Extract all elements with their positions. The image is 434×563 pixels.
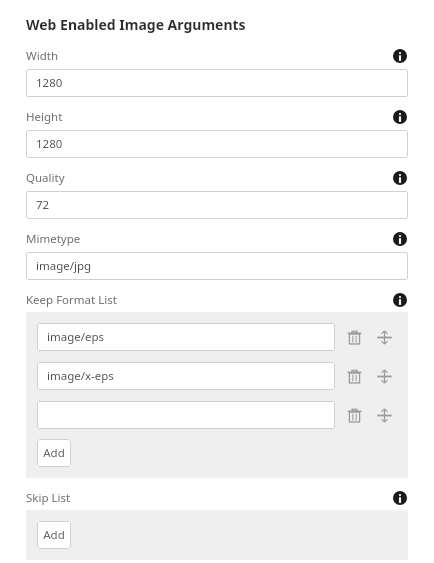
staticText: Skip List xyxy=(26,490,71,506)
staticText: Add xyxy=(43,445,65,461)
staticText: Width xyxy=(26,48,58,64)
staticText: Height xyxy=(26,109,63,125)
staticText: Web Enabled Image Arguments xyxy=(26,15,246,34)
button[interactable]: image/eps xyxy=(37,323,335,351)
button[interactable] xyxy=(37,401,335,429)
staticText: image/jpg xyxy=(36,258,92,274)
button[interactable]: Add xyxy=(37,439,71,467)
staticText: image/x-eps xyxy=(47,368,114,384)
button[interactable]: 72 xyxy=(26,191,408,219)
staticText: 1280 xyxy=(36,136,63,152)
button[interactable]: Reorder xyxy=(371,363,397,389)
staticText: Add xyxy=(43,527,65,543)
button[interactable]: Reorder xyxy=(371,324,397,350)
button[interactable]: Delete xyxy=(341,402,367,428)
button[interactable]: image/x-eps xyxy=(37,362,335,390)
button[interactable]: More information xyxy=(392,48,408,64)
button[interactable]: 1280 xyxy=(26,130,408,158)
button[interactable]: 1280 xyxy=(26,69,408,97)
staticText: Quality xyxy=(26,170,65,186)
button[interactable]: More information xyxy=(392,109,408,125)
staticText: 1280 xyxy=(36,75,63,91)
staticText: Mimetype xyxy=(26,231,81,247)
staticText: Keep Format List xyxy=(26,292,117,308)
button[interactable]: Reorder xyxy=(371,402,397,428)
button[interactable]: More information xyxy=(392,292,408,308)
button[interactable]: image/jpg xyxy=(26,252,408,280)
button[interactable]: Delete xyxy=(341,363,367,389)
staticText: image/eps xyxy=(47,329,105,345)
staticText: 72 xyxy=(36,197,50,213)
button[interactable]: Add xyxy=(37,521,71,549)
button[interactable]: More information xyxy=(392,170,408,186)
button[interactable]: Delete xyxy=(341,324,367,350)
button[interactable]: More information xyxy=(392,490,408,506)
button[interactable]: More information xyxy=(392,231,408,247)
